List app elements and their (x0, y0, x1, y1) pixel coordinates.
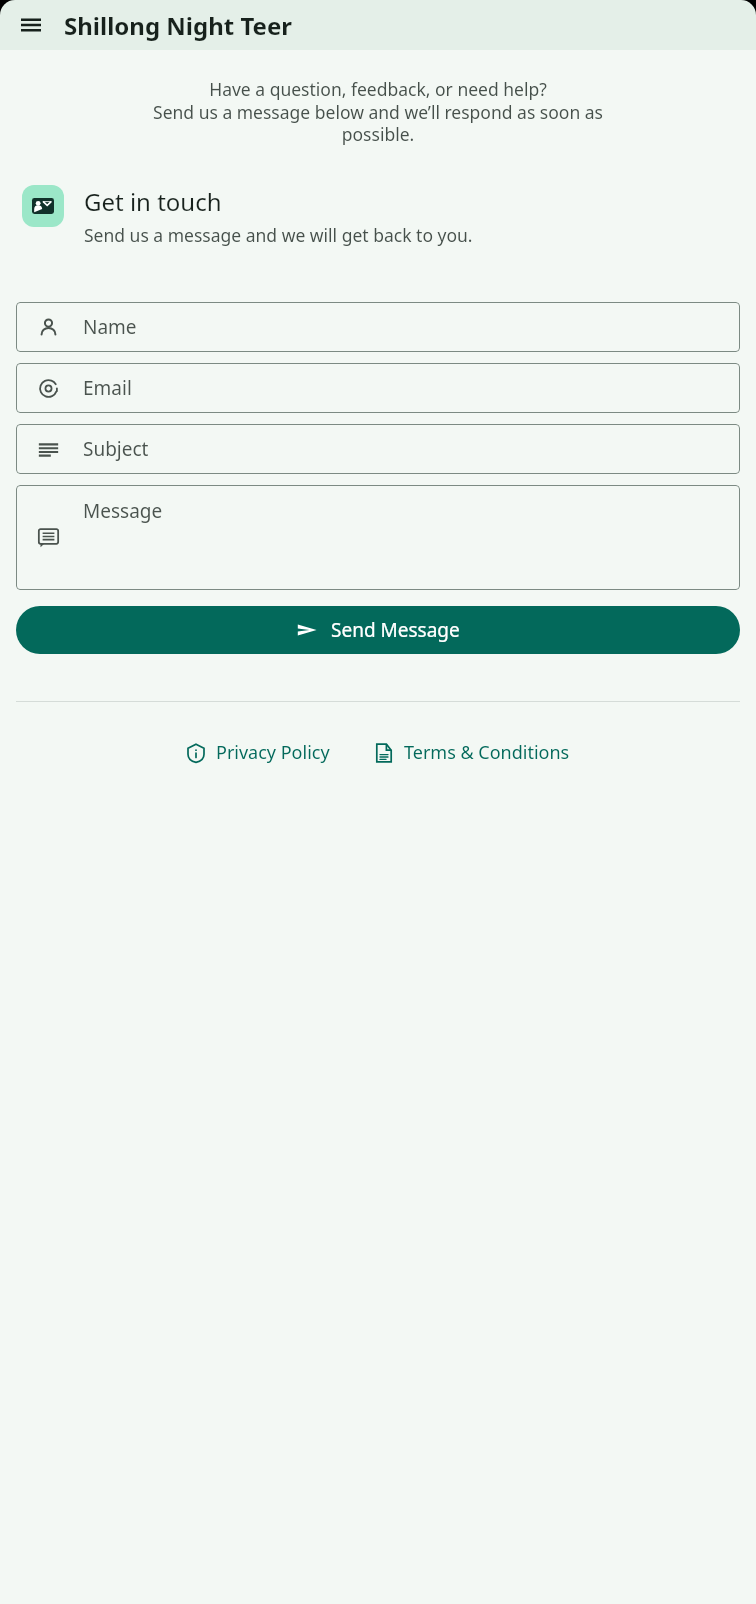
staticText: Send Message (331, 617, 460, 643)
button[interactable]: Email (16, 363, 740, 413)
button[interactable]: Name (16, 302, 740, 352)
staticText: Shillong Night Teer (64, 9, 292, 42)
staticText: Send us a message and we will get back t… (84, 223, 473, 247)
button[interactable]: Get in touch (22, 185, 734, 247)
button[interactable]: Message (16, 485, 740, 590)
staticText: Privacy Policy (216, 740, 330, 765)
button[interactable]: Privacy Policy (186, 740, 330, 765)
staticText: Get in touch (84, 185, 222, 218)
staticText: Subject (83, 436, 149, 462)
staticText: Have a question, feedback, or need help?… (22, 77, 734, 146)
button[interactable]: Send Message (16, 606, 740, 654)
button[interactable]: Subject (16, 424, 740, 474)
button[interactable]: Terms & Conditions (374, 740, 570, 765)
staticText: Terms & Conditions (404, 740, 570, 765)
staticText: Message (83, 498, 163, 524)
staticText: Name (83, 314, 137, 340)
staticText: Email (83, 375, 132, 401)
button[interactable]: Open navigation menu (12, 6, 50, 44)
